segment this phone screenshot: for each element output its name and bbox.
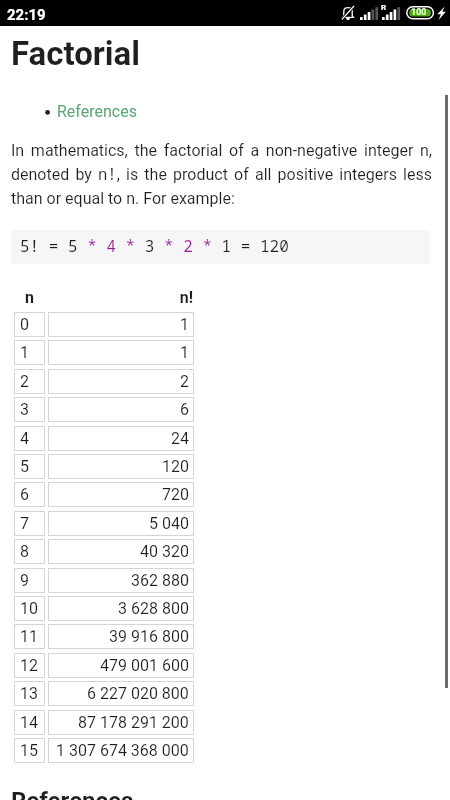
staticText: 22:19 [7,6,46,24]
staticText: 11 [20,627,38,646]
staticText: 1 307 674 368 000 [56,741,189,760]
staticText: In mathematics, the factorial of a non-n… [11,141,432,208]
staticText: 10 [20,599,38,618]
staticText: 1 [180,315,189,334]
staticText: 3 [20,400,29,419]
staticText: n [14,288,45,307]
staticText: 120 [162,457,189,476]
staticText: R [381,3,387,12]
staticText: 87 178 291 200 [78,713,189,732]
staticText: 39 916 800 [109,627,189,646]
staticText: 4 [20,429,29,448]
staticText: 6 [20,485,29,504]
staticText: 2 [180,372,189,391]
staticText: 6 227 020 800 [87,684,189,703]
staticText: 3 628 800 [118,599,189,618]
staticText: 1 [20,343,29,362]
staticText: 9 [20,571,29,590]
staticText: 24 [171,429,189,448]
staticText: 5 [20,457,29,476]
staticText: 100 [411,7,427,18]
staticText: References [57,102,137,121]
staticText: n! [48,288,193,307]
staticText: 720 [162,485,189,504]
staticText: 6 [180,400,189,419]
staticText: 2 [20,372,29,391]
staticText: 13 [20,684,38,703]
staticText: 15 [20,741,38,760]
staticText: Factorial [11,34,141,73]
button[interactable]: References [57,101,141,125]
staticText: References [11,787,134,800]
staticText: 40 320 [140,542,189,561]
staticText: 14 [20,713,38,732]
staticText: 7 [20,514,29,533]
staticText: 5! = 5 * 4 * 3 * 2 * 1 = 120 [20,235,289,257]
staticText: 362 880 [131,571,189,590]
staticText: 8 [20,542,29,561]
staticText: 12 [20,656,38,675]
staticText: 0 [20,315,29,334]
staticText: 1 [180,343,189,362]
staticText: 479 001 600 [100,656,189,675]
staticText: 5 040 [149,514,189,533]
